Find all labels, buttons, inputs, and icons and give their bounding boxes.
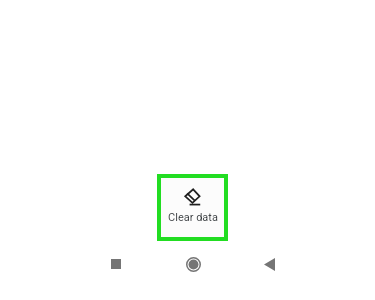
button[interactable]: Home [177, 248, 209, 280]
button[interactable]: Overview [100, 248, 132, 280]
staticText: Clear data [168, 211, 218, 224]
button[interactable]: Clear data [161, 178, 224, 237]
button[interactable]: Back [253, 248, 285, 280]
